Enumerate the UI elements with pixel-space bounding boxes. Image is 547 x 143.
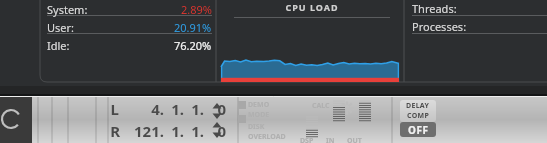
staticText: DEMO — [248, 100, 270, 110]
staticText: 121. — [126, 121, 164, 141]
staticText: DISK — [248, 122, 265, 132]
staticText: OFF — [408, 123, 429, 137]
button[interactable]: CPU load graph — [221, 57, 399, 82]
staticText: Processes: — [412, 19, 467, 34]
button[interactable]: Adjust position — [210, 100, 224, 138]
staticText: System: — [47, 2, 88, 17]
staticText: Threads: — [412, 1, 457, 16]
button[interactable]: System: — [47, 1, 212, 18]
staticText: OVERLOAD — [248, 132, 286, 142]
staticText: 76.20% — [174, 38, 212, 53]
staticText: IN — [326, 136, 335, 143]
button[interactable]: Idle: — [47, 37, 212, 54]
staticText: 4. — [126, 99, 164, 119]
staticText: 1. — [164, 99, 184, 119]
button[interactable]: Cycle — [2, 110, 20, 128]
staticText: CALC — [312, 101, 330, 111]
staticText: 1. — [184, 99, 204, 119]
staticText: 0 — [204, 99, 226, 119]
staticText: User: — [47, 20, 75, 35]
staticText: MODE — [248, 110, 270, 120]
staticText: 2.89% — [181, 2, 212, 17]
staticText: 1. — [184, 121, 204, 141]
staticText: 20.91% — [174, 20, 212, 35]
staticText: CPU LOAD — [234, 1, 390, 13]
button[interactable]: DELAY — [400, 100, 436, 137]
staticText: 0 — [204, 121, 226, 141]
staticText: DSP — [300, 136, 314, 143]
button[interactable]: L — [110, 98, 238, 142]
staticText: 1. — [164, 121, 184, 141]
staticText: L — [110, 99, 119, 119]
button[interactable]: User: — [47, 19, 212, 36]
staticText: Idle: — [47, 38, 70, 53]
staticText: DELAY — [406, 101, 430, 111]
staticText: COMP — [407, 111, 430, 121]
staticText: OUT — [347, 136, 362, 143]
staticText: R — [110, 121, 120, 141]
